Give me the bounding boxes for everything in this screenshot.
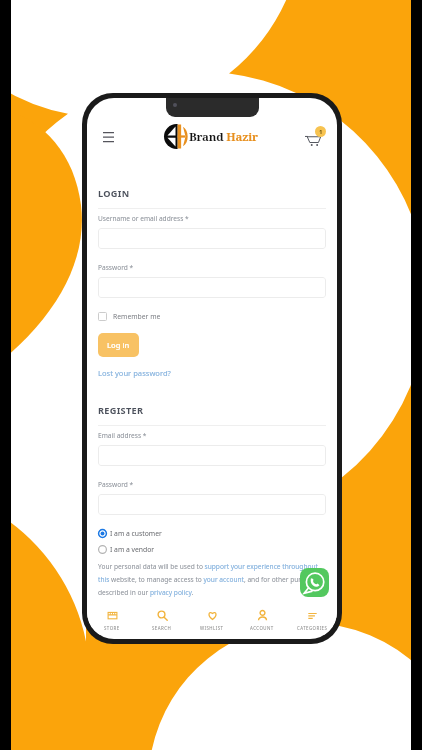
button[interactable]: ACCOUNT [237, 610, 287, 631]
staticText: Username or email address * [98, 214, 189, 223]
button[interactable] [98, 494, 326, 515]
button[interactable]: Chat on WhatsApp [300, 568, 329, 597]
button[interactable]: WISHLIST [187, 610, 237, 631]
staticText: SEARCH [152, 625, 172, 631]
button[interactable]: I am a customer [98, 529, 162, 538]
button[interactable]: Menu [99, 127, 117, 145]
button[interactable]: Lost your password? [98, 368, 171, 378]
button[interactable]: Brand Hazir [164, 124, 258, 149]
staticText: 1 [319, 128, 323, 136]
staticText: Password * [98, 263, 134, 272]
staticText: ACCOUNT [250, 625, 274, 631]
staticText: WISHLIST [200, 625, 224, 631]
staticText: STORE [104, 625, 120, 631]
staticText: Remember me [113, 312, 161, 321]
button[interactable]: Remember me [98, 312, 161, 321]
staticText: Log in [107, 340, 130, 350]
staticText: I am a customer [110, 529, 162, 538]
staticText: CATEGORIES [297, 625, 328, 631]
button[interactable] [98, 228, 326, 249]
button[interactable] [98, 277, 326, 298]
button[interactable]: SEARCH [137, 610, 187, 631]
staticText: LOGIN [98, 187, 130, 200]
staticText: REGISTER [98, 404, 144, 417]
button[interactable]: CATEGORIES [287, 610, 337, 631]
button[interactable] [98, 445, 326, 466]
staticText: Email address * [98, 431, 147, 440]
button[interactable]: STORE [87, 610, 137, 631]
staticText: Password * [98, 480, 134, 489]
button[interactable]: Cart [305, 126, 326, 147]
staticText: Your personal data will be used to suppo… [98, 562, 326, 597]
staticText: Brand Hazir [189, 129, 258, 145]
staticText: I am a vendor [110, 545, 155, 554]
button[interactable]: I am a vendor [98, 545, 155, 554]
button[interactable]: Log in [98, 333, 139, 357]
